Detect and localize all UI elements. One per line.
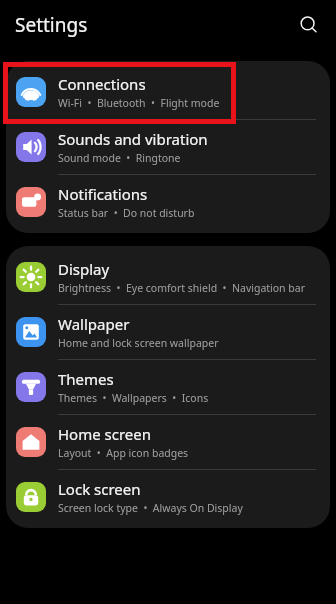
staticText: Sounds and vibration (58, 129, 208, 149)
button[interactable]: Wallpaper (6, 305, 330, 359)
staticText: Screen lock type • Always On Display (58, 501, 243, 515)
staticText: Settings (15, 12, 88, 38)
staticText: Status bar • Do not disturb (58, 206, 195, 220)
staticText: Layout • App icon badges (58, 446, 189, 460)
button[interactable]: Home screen (6, 415, 330, 469)
staticText: Themes (58, 369, 114, 389)
staticText: Lock screen (58, 479, 141, 499)
staticText: Brightness • Eye comfort shield • Naviga… (58, 281, 306, 295)
staticText: Connections (58, 74, 146, 94)
staticText: Sound mode • Ringtone (58, 151, 181, 165)
staticText: Wallpaper (58, 314, 130, 334)
staticText: Wi-Fi • Bluetooth • Flight mode (58, 96, 220, 110)
button[interactable]: Themes (6, 360, 330, 414)
button[interactable]: Notifications (6, 175, 330, 229)
button[interactable]: Search (292, 8, 326, 42)
button[interactable]: Lock screen (6, 470, 330, 524)
staticText: Themes • Wallpapers • Icons (58, 391, 209, 405)
button[interactable]: Sounds and vibration (6, 120, 330, 174)
staticText: Home and lock screen wallpaper (58, 336, 219, 350)
staticText: Notifications (58, 184, 148, 204)
button[interactable]: Connections (6, 65, 330, 119)
staticText: Display (58, 259, 110, 279)
button[interactable]: Display (6, 250, 330, 304)
staticText: Home screen (58, 424, 152, 444)
